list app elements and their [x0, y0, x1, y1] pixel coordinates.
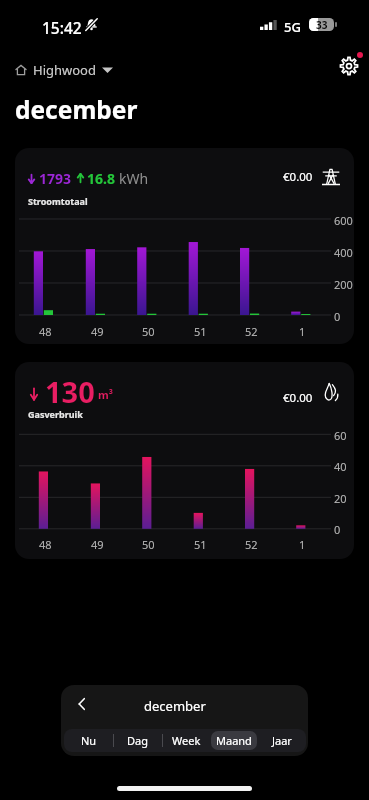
button[interactable]: 1793: [15, 148, 354, 344]
button[interactable]: Previous month: [67, 689, 97, 719]
button[interactable]: 130: [15, 362, 354, 559]
button[interactable]: Nu: [65, 731, 112, 750]
staticText: 1793: [39, 169, 72, 188]
staticText: 52: [245, 324, 258, 339]
staticText: 40: [334, 459, 347, 474]
staticText: Gasverbruik: [28, 408, 83, 420]
staticText: m³: [98, 387, 113, 402]
button[interactable]: Highwood: [10, 57, 118, 83]
staticText: €0.00: [283, 390, 313, 406]
staticText: 0: [334, 522, 341, 537]
staticText: 52: [245, 537, 258, 552]
staticText: 33: [316, 18, 328, 31]
staticText: 51: [194, 537, 207, 552]
staticText: 50: [142, 324, 155, 339]
staticText: 16.8: [87, 169, 115, 188]
staticText: kWh: [119, 169, 149, 188]
staticText: 48: [39, 537, 52, 552]
staticText: 400: [334, 245, 353, 260]
button[interactable]: Week: [163, 731, 209, 750]
staticText: december: [144, 697, 206, 715]
staticText: 200: [334, 277, 353, 292]
staticText: 20: [334, 491, 347, 506]
staticText: Stroomtotaal: [28, 195, 88, 207]
staticText: december: [15, 93, 138, 126]
staticText: 49: [91, 324, 104, 339]
staticText: Maand: [216, 733, 252, 748]
staticText: 600: [334, 213, 353, 228]
staticText: 49: [91, 537, 104, 552]
staticText: Nu: [81, 733, 97, 748]
staticText: €0.00: [283, 169, 313, 185]
staticText: Dag: [127, 733, 148, 748]
staticText: 0: [334, 309, 341, 324]
staticText: 130: [45, 372, 95, 411]
staticText: Week: [172, 733, 201, 748]
staticText: Jaar: [272, 733, 292, 748]
button[interactable]: Maand: [211, 731, 257, 750]
staticText: 1: [299, 537, 306, 552]
staticText: 51: [194, 324, 207, 339]
staticText: 48: [39, 324, 52, 339]
button[interactable]: Jaar: [259, 731, 305, 750]
staticText: Highwood: [33, 61, 96, 79]
button[interactable]: Dag: [114, 731, 161, 750]
button[interactable]: Settings: [330, 47, 369, 85]
staticText: 5G: [284, 18, 301, 36]
staticText: 50: [142, 537, 155, 552]
staticText: 15:42: [42, 17, 82, 38]
staticText: 1: [299, 324, 306, 339]
staticText: 60: [334, 428, 347, 443]
